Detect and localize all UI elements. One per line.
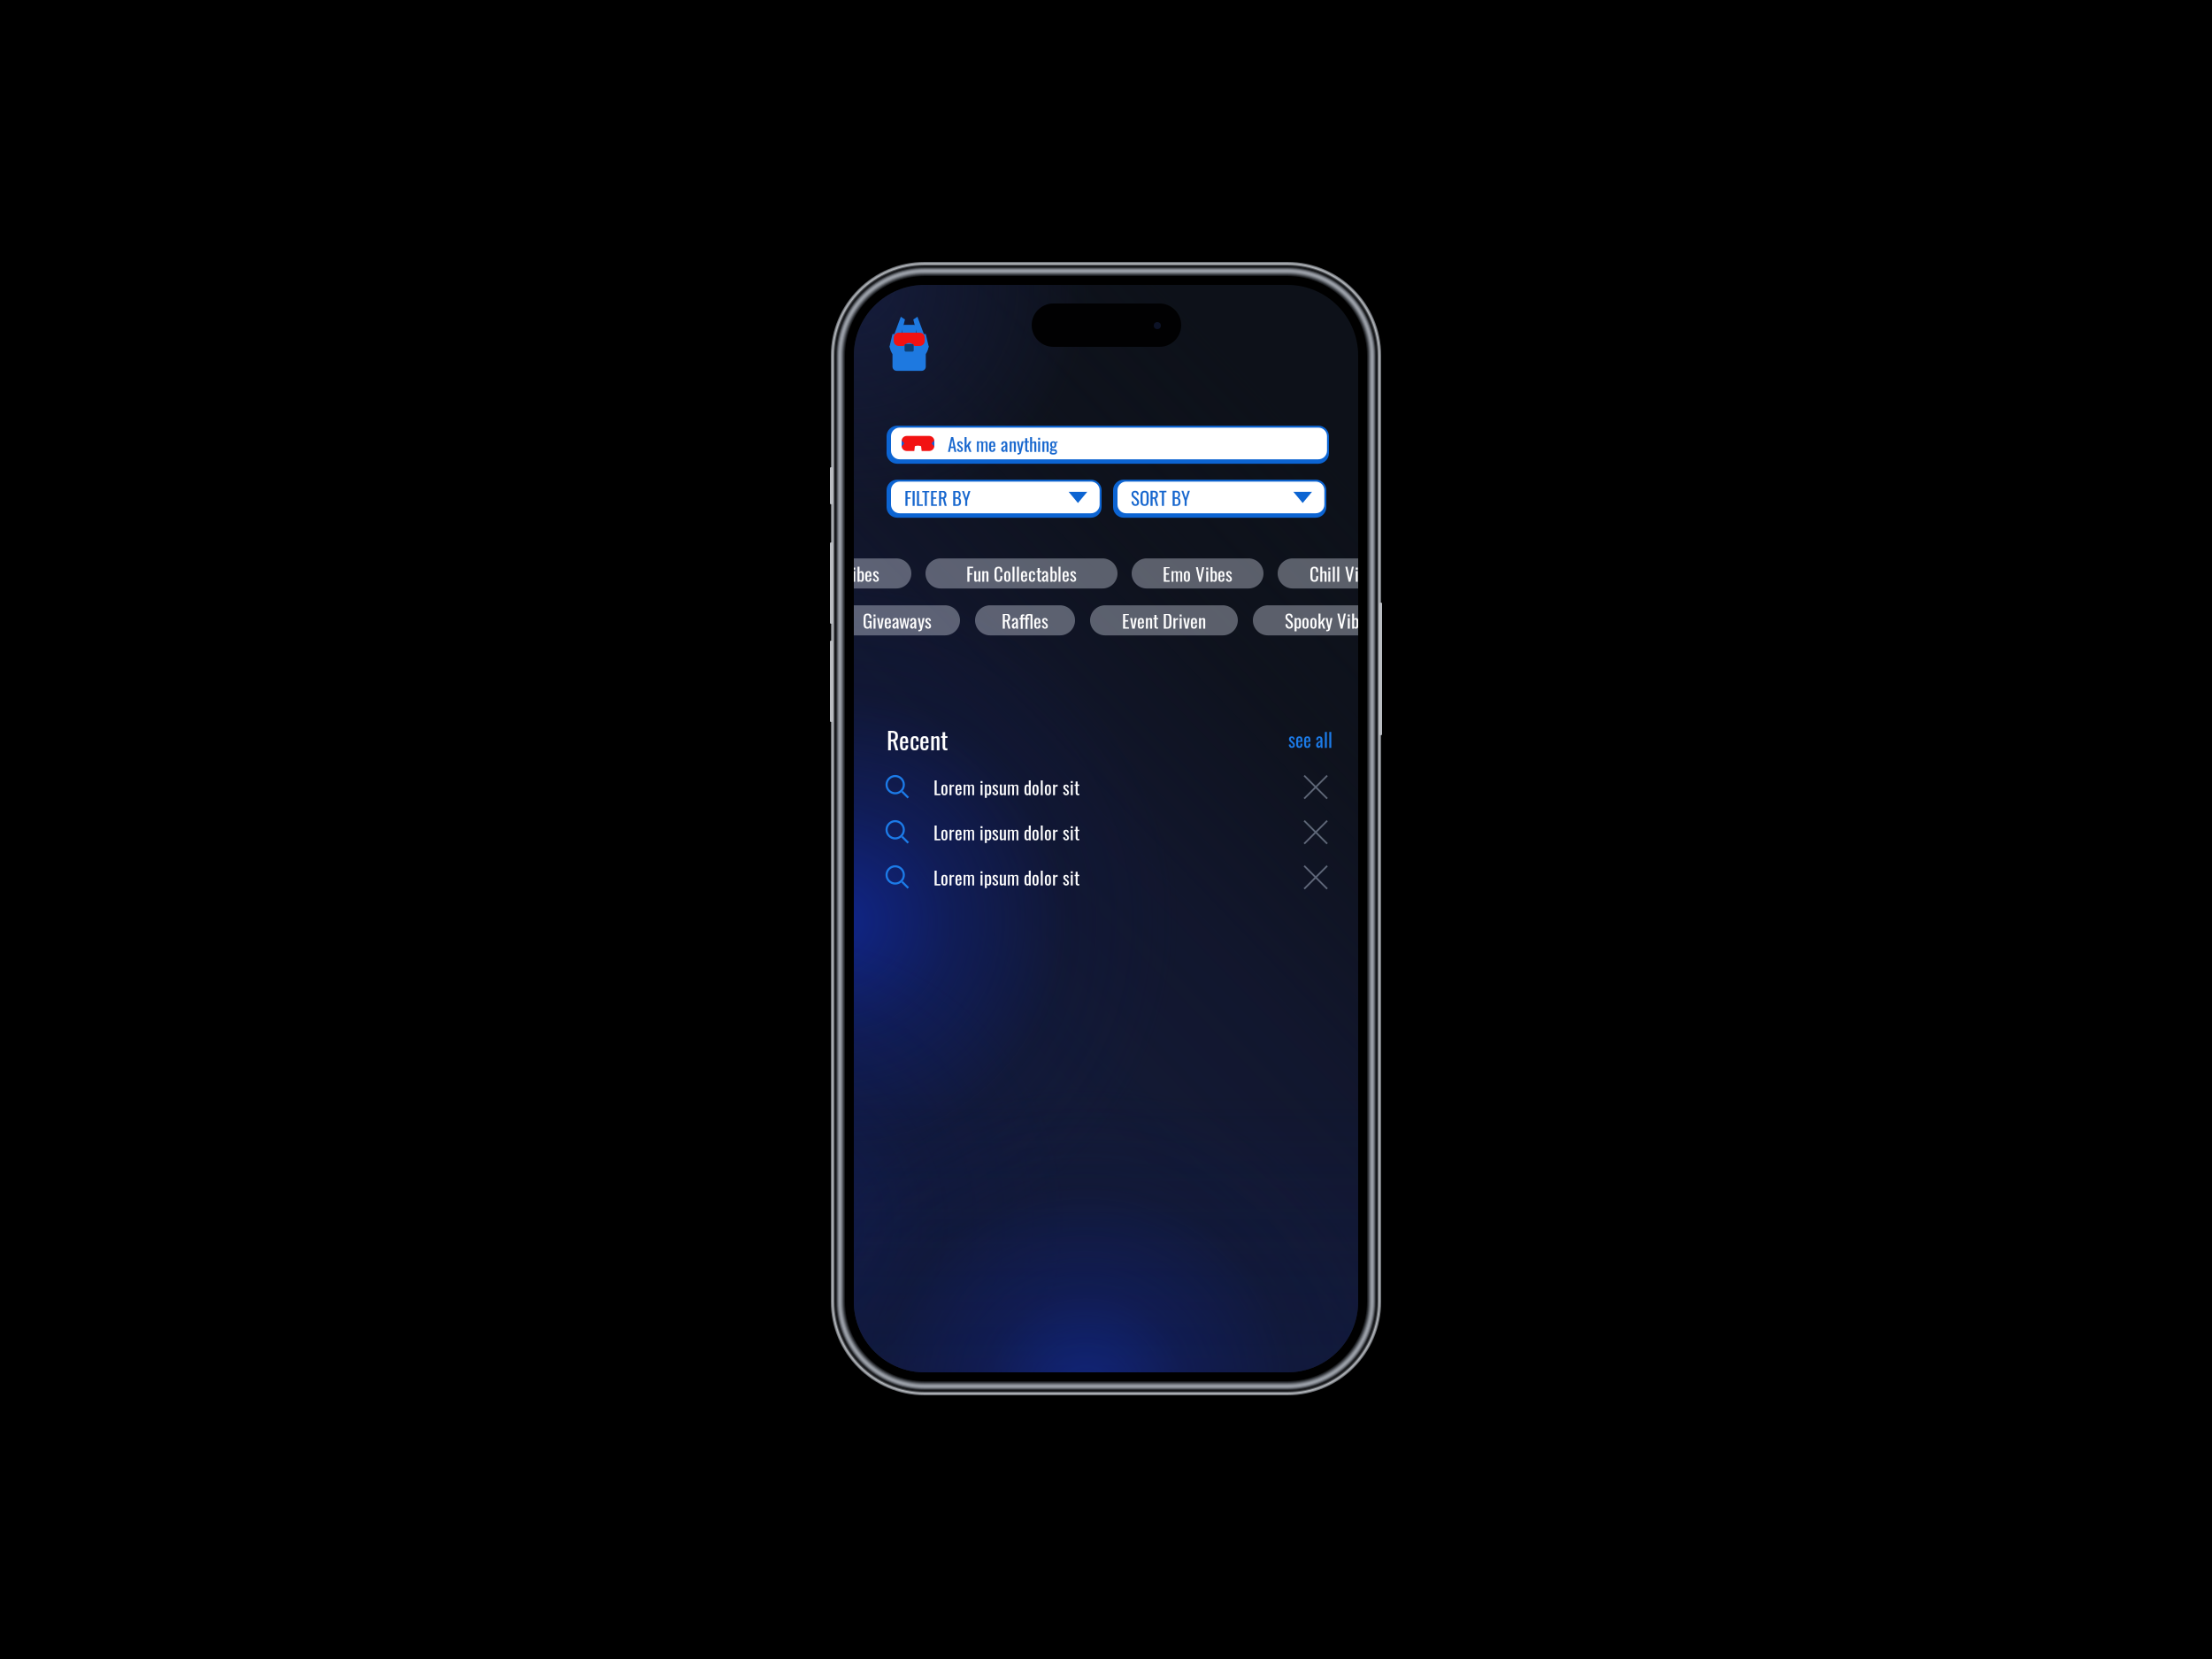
staticText: Lorem ipsum dolor sit bbox=[933, 774, 1079, 801]
staticText: FILTER BY bbox=[904, 484, 971, 511]
button[interactable]: Lorem ipsum dolor sit bbox=[887, 765, 1299, 810]
button[interactable]: Home bbox=[854, 285, 930, 371]
staticText: Raffles bbox=[1002, 607, 1048, 634]
staticText: Spooky Vibes bbox=[1285, 607, 1374, 634]
button[interactable]: Event Driven bbox=[1090, 605, 1238, 635]
button[interactable]: Cute Vibes bbox=[775, 558, 911, 588]
button[interactable]: Remove recent search bbox=[1299, 855, 1333, 900]
staticText: Recent bbox=[887, 721, 949, 757]
button[interactable]: Lorem ipsum dolor sit bbox=[887, 855, 1299, 900]
staticText: Fun Collectables bbox=[966, 560, 1077, 587]
button[interactable]: Giveaways bbox=[834, 605, 960, 635]
button[interactable]: Emo Vibes bbox=[1132, 558, 1263, 588]
button[interactable]: SORT BY bbox=[1113, 480, 1326, 518]
staticText: Ask me anything bbox=[948, 430, 1057, 457]
button[interactable]: Remove recent search bbox=[1299, 765, 1333, 810]
staticText: SORT BY bbox=[1131, 484, 1190, 511]
button[interactable]: Lorem ipsum dolor sit bbox=[887, 810, 1299, 855]
staticText: see all bbox=[1288, 725, 1333, 753]
button[interactable]: Remove recent search bbox=[1299, 810, 1333, 855]
staticText: Giveaways bbox=[863, 607, 932, 634]
staticText: Event Driven bbox=[1122, 607, 1206, 634]
staticText: Cute Vibes bbox=[807, 560, 879, 587]
button[interactable]: Raffles bbox=[975, 605, 1075, 635]
staticText: Lorem ipsum dolor sit bbox=[933, 864, 1079, 891]
button[interactable]: see all bbox=[1288, 725, 1333, 753]
button[interactable]: Spooky Vibes bbox=[1253, 605, 1406, 635]
button[interactable]: Fun Collectables bbox=[926, 558, 1118, 588]
staticText: Chill Vibes bbox=[1310, 560, 1382, 587]
staticText: Lorem ipsum dolor sit bbox=[933, 819, 1079, 846]
button[interactable]: Chill Vibes bbox=[1278, 558, 1414, 588]
button[interactable]: Ask me anything bbox=[887, 426, 1329, 464]
button[interactable]: FILTER BY bbox=[887, 480, 1102, 518]
staticText: Emo Vibes bbox=[1163, 560, 1233, 587]
